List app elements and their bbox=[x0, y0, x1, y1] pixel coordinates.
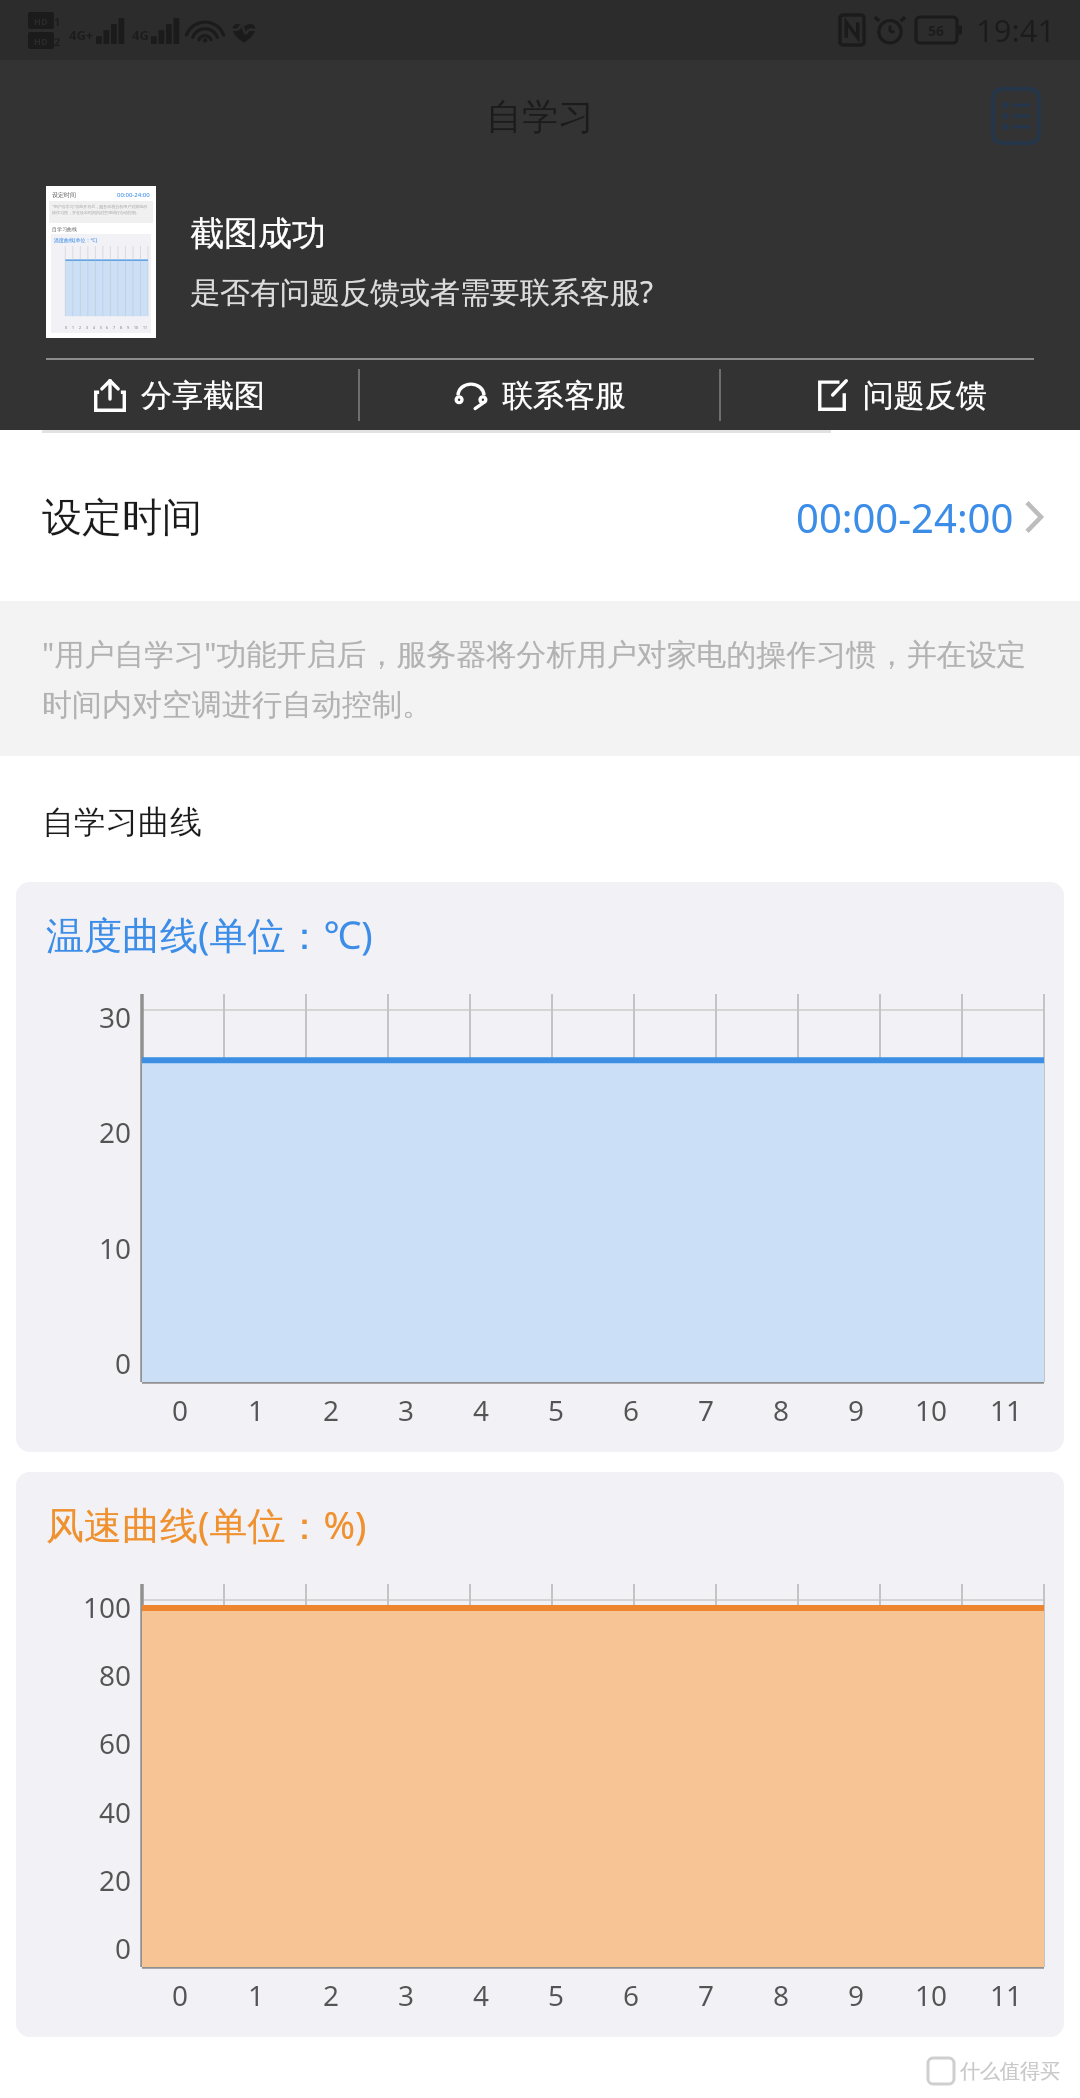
staticText: 11 bbox=[143, 325, 148, 330]
staticText: 20 bbox=[99, 1861, 132, 1899]
button[interactable]: 设定时间 bbox=[0, 433, 1080, 601]
staticText: 5 bbox=[548, 1391, 565, 1429]
staticText: 2 bbox=[323, 1976, 340, 2014]
staticText: 7 bbox=[113, 325, 116, 330]
staticText: 自学习曲线 bbox=[52, 226, 77, 232]
button[interactable]: 分享截图 bbox=[0, 360, 358, 430]
staticText: "用户自学习"功能开启后，服务器将分析用户对家电的操作习惯，并在设定时间内对空调… bbox=[52, 204, 150, 215]
staticText: 6 bbox=[623, 1976, 640, 2014]
staticText: 自学习曲线 bbox=[42, 802, 202, 842]
staticText: 40 bbox=[99, 1793, 132, 1831]
staticText: 1 bbox=[54, 14, 61, 29]
staticText: 2 bbox=[54, 34, 61, 49]
staticText: 0 bbox=[115, 1929, 132, 1967]
staticText: 30 bbox=[99, 998, 132, 1036]
staticText: 分享截图 bbox=[141, 376, 265, 415]
staticText: 11 bbox=[990, 1976, 1023, 2014]
staticText: 3 bbox=[86, 325, 89, 330]
staticText: 1 bbox=[72, 325, 75, 330]
staticText: HD bbox=[34, 15, 48, 27]
staticText: 5 bbox=[100, 325, 103, 330]
staticText: 100 bbox=[83, 1588, 132, 1626]
staticText: 9 bbox=[127, 325, 130, 330]
staticText: 00:00-24:00 bbox=[796, 490, 1014, 544]
button[interactable]: 列表 bbox=[988, 88, 1044, 144]
staticText: 8 bbox=[120, 325, 123, 330]
staticText: 8 bbox=[773, 1391, 790, 1429]
staticText: 0 bbox=[172, 1976, 189, 2014]
staticText: 10 bbox=[915, 1391, 948, 1429]
staticText: 9 bbox=[848, 1976, 865, 2014]
staticText: 1 bbox=[248, 1976, 265, 2014]
staticText: HD bbox=[34, 35, 48, 47]
staticText: 4 bbox=[473, 1976, 490, 2014]
staticText: 设定时间 bbox=[52, 191, 76, 199]
staticText: 2 bbox=[323, 1391, 340, 1429]
staticText: "用户自学习"功能开启后，服务器将分析用户对家电的操作习惯，并在设定时间内对空调… bbox=[42, 633, 1038, 724]
staticText: 00:00-24:00 bbox=[117, 191, 150, 199]
staticText: 6 bbox=[106, 325, 109, 330]
staticText: 是否有问题反馈或者需要联系客服? bbox=[190, 271, 654, 312]
staticText: 6 bbox=[623, 1391, 640, 1429]
staticText: 10 bbox=[915, 1976, 948, 2014]
button[interactable]: 联系客服 bbox=[360, 360, 719, 430]
staticText: 4 bbox=[93, 325, 96, 330]
staticText: 0 bbox=[172, 1391, 189, 1429]
staticText: 3 bbox=[398, 1976, 415, 2014]
staticText: 20 bbox=[99, 1113, 132, 1151]
staticText: 温度曲线(单位：℃) bbox=[54, 237, 97, 244]
staticText: 11 bbox=[990, 1391, 1023, 1429]
staticText: 风速曲线(单位：%) bbox=[46, 1498, 367, 1550]
staticText: 3 bbox=[398, 1391, 415, 1429]
staticText: 4G bbox=[132, 26, 149, 44]
staticText: 设定时间 bbox=[42, 492, 202, 542]
staticText: 4G+ bbox=[69, 26, 94, 44]
staticText: 0 bbox=[115, 1344, 132, 1382]
staticText: 问题反馈 bbox=[863, 376, 987, 415]
staticText: 10 bbox=[99, 1229, 132, 1267]
staticText: 联系客服 bbox=[502, 376, 626, 415]
staticText: 7 bbox=[698, 1976, 715, 2014]
staticText: 2 bbox=[79, 325, 82, 330]
staticText: 截图成功 bbox=[190, 212, 326, 255]
staticText: 温度曲线(单位：℃) bbox=[46, 908, 373, 960]
staticText: 5 bbox=[548, 1976, 565, 2014]
staticText: 56 bbox=[928, 21, 945, 40]
staticText: 60 bbox=[99, 1724, 132, 1762]
staticText: 80 bbox=[99, 1656, 132, 1694]
staticText: 自学习 bbox=[486, 94, 594, 139]
staticText: 1 bbox=[248, 1391, 265, 1429]
staticText: 4 bbox=[473, 1391, 490, 1429]
staticText: 10 bbox=[134, 325, 139, 330]
button[interactable]: 问题反馈 bbox=[721, 360, 1080, 430]
staticText: 0 bbox=[65, 325, 68, 330]
staticText: 8 bbox=[773, 1976, 790, 2014]
staticText: 19:41 bbox=[976, 9, 1056, 51]
staticText: 什么值得买 bbox=[960, 2059, 1060, 2084]
staticText: 7 bbox=[698, 1391, 715, 1429]
staticText: 9 bbox=[848, 1391, 865, 1429]
